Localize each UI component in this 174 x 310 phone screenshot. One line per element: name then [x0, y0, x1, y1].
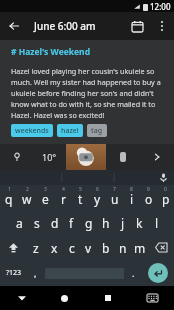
button[interactable]: z	[27, 235, 45, 260]
button[interactable]: 10°	[33, 144, 66, 170]
staticText: l	[155, 215, 159, 231]
staticText: 9	[147, 186, 150, 193]
staticText: y	[94, 191, 101, 207]
staticText: 7	[113, 186, 116, 193]
staticText: f	[69, 215, 74, 231]
staticText: 3	[44, 186, 47, 193]
staticText: q	[5, 191, 13, 207]
staticText: ,	[34, 267, 37, 279]
staticText: i	[130, 191, 134, 207]
button[interactable]: Reminder	[124, 13, 150, 39]
staticText: .	[132, 267, 135, 279]
staticText: w	[22, 191, 32, 207]
button[interactable]: 6	[89, 185, 106, 210]
staticText: tag	[91, 126, 103, 136]
staticText: z	[33, 240, 39, 256]
button[interactable]: 2	[18, 185, 36, 210]
button[interactable]: Home	[43, 286, 86, 310]
button[interactable]: 9	[140, 185, 157, 210]
button[interactable]: v	[80, 235, 97, 260]
button[interactable]: hazel	[57, 124, 83, 137]
staticText: p	[162, 191, 170, 207]
button[interactable]: Photo	[66, 144, 106, 170]
button[interactable]: l	[148, 210, 165, 235]
button[interactable]: j	[114, 210, 131, 235]
staticText: n	[119, 240, 127, 256]
staticText: k	[136, 215, 143, 231]
button[interactable]: More options	[150, 14, 174, 38]
staticText: 10°	[42, 151, 57, 163]
button[interactable]: 5	[72, 185, 89, 210]
button[interactable]: Switch keyboard	[130, 286, 174, 310]
button[interactable]: k	[131, 210, 148, 235]
button[interactable]: 4	[54, 185, 72, 210]
staticText: hazel	[61, 126, 79, 136]
button[interactable]: a	[10, 210, 28, 235]
staticText: ?123	[6, 268, 22, 278]
button[interactable]: Attach	[106, 144, 140, 170]
staticText: # Hazel's Weekend	[11, 46, 91, 58]
staticText: c	[69, 240, 75, 256]
button[interactable]: Location	[0, 144, 33, 170]
button[interactable]: Backspace	[148, 235, 174, 260]
button[interactable]: 3	[36, 185, 54, 210]
button[interactable]: Voice input	[152, 170, 174, 185]
button[interactable]: b	[97, 235, 114, 260]
button[interactable]: f	[63, 210, 80, 235]
button[interactable]: s	[28, 210, 46, 235]
button[interactable]: ,	[28, 260, 43, 286]
staticText: b	[102, 240, 110, 256]
button[interactable]: m	[131, 235, 148, 260]
staticText: o	[145, 191, 153, 207]
staticText: a	[16, 215, 23, 231]
staticText: u	[111, 191, 119, 207]
staticText: x	[51, 240, 58, 256]
staticText: 6	[96, 186, 99, 193]
staticText: s	[34, 215, 40, 231]
button[interactable]: ?123	[0, 260, 28, 286]
staticText: weekends	[15, 126, 49, 136]
staticText: r	[61, 191, 66, 207]
staticText: e	[42, 191, 49, 207]
staticText: 0	[164, 186, 167, 193]
button[interactable]: x	[45, 235, 63, 260]
staticText: m	[134, 240, 146, 256]
staticText: June 6:00 am	[34, 19, 96, 33]
staticText: 1	[8, 186, 11, 193]
staticText: Hazel loved playing her cousin's ukulele…	[11, 66, 163, 120]
button[interactable]: Enter	[148, 263, 168, 283]
staticText: 8	[130, 186, 133, 193]
button[interactable]: weekends	[11, 124, 53, 137]
button[interactable]: Back	[0, 12, 28, 40]
staticText: v	[85, 240, 92, 256]
staticText: 4	[62, 186, 65, 193]
button[interactable]: Shift	[0, 235, 27, 260]
button[interactable]: d	[46, 210, 63, 235]
button[interactable]: 0	[157, 185, 174, 210]
button[interactable]: n	[114, 235, 131, 260]
button[interactable]: c	[63, 235, 80, 260]
button[interactable]: 7	[106, 185, 123, 210]
staticText: j	[121, 215, 125, 231]
staticText: g	[85, 215, 93, 231]
staticText: t	[78, 191, 83, 207]
button[interactable]: 1	[0, 185, 18, 210]
button[interactable]: Hide keyboard	[0, 286, 43, 310]
button[interactable]: .	[126, 260, 141, 286]
staticText: 12:00	[150, 1, 171, 12]
button[interactable]: Recents	[86, 286, 130, 310]
button[interactable]: tag	[87, 124, 107, 137]
staticText: 2	[26, 186, 29, 193]
staticText: 5	[79, 186, 82, 193]
staticText: h	[102, 215, 110, 231]
button[interactable]: g	[80, 210, 97, 235]
button[interactable]: h	[97, 210, 114, 235]
button[interactable]: More	[140, 144, 174, 170]
staticText: d	[51, 215, 59, 231]
button[interactable]: 8	[123, 185, 140, 210]
